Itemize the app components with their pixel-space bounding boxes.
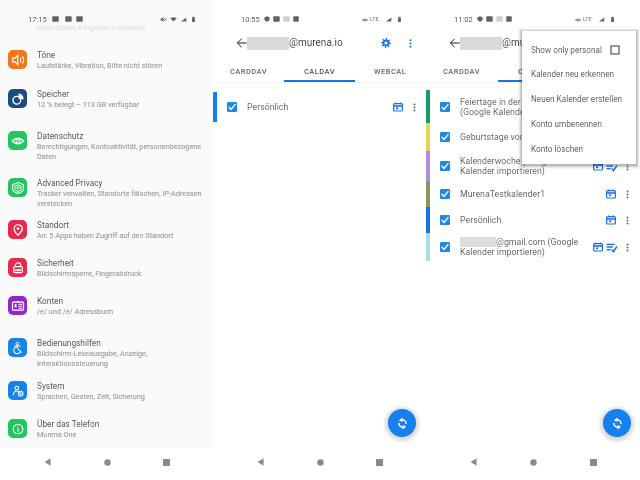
button[interactable]: Persönlich (426, 207, 640, 233)
button[interactable]: Home (522, 451, 544, 473)
staticText: Tracker verwalten, Standorte fälschen, I… (37, 189, 202, 208)
button[interactable]: Standort (0, 213, 213, 246)
staticText: Sprachen, Gesten, Zeit, Sicherung (37, 392, 145, 401)
button[interactable]: WEBCAL (355, 60, 426, 82)
staticText: @murena.io (502, 37, 556, 49)
button[interactable]: CALDAV (498, 60, 569, 82)
staticText: Konto löschen (531, 144, 584, 154)
staticText: @gmail.com (Google (496, 237, 579, 247)
staticText: (Google Kalender importieren) (460, 107, 578, 117)
staticText: Konto umbenennen (531, 119, 602, 129)
other: Calendar (393, 102, 403, 112)
button[interactable]: Konto löschen (522, 136, 636, 161)
other: Calendar (606, 215, 616, 225)
staticText: Kalenderwoche (Google (460, 156, 554, 166)
button[interactable]: More options (621, 207, 633, 233)
button[interactable]: CARDDAV (426, 60, 498, 82)
button[interactable]: More options (621, 233, 633, 261)
button[interactable]: Settings (591, 35, 607, 51)
button[interactable]: More options (621, 151, 633, 181)
staticText: Sicherheit (37, 258, 74, 268)
button[interactable]: Back (249, 451, 271, 473)
button[interactable]: Home (96, 451, 118, 473)
staticText: Feiertage in der Schweiz (460, 97, 556, 107)
button[interactable]: Speicher (0, 82, 213, 115)
staticText: Konten (37, 296, 64, 306)
button[interactable]: Feiertage in der Schweiz (426, 90, 640, 123)
staticText: CALDAV (304, 67, 336, 76)
staticText: CALDAV (518, 67, 550, 76)
staticText: @murena.io (289, 37, 343, 49)
staticText: /e/ und /e/ Adressbuch (37, 307, 114, 316)
button[interactable]: Recents (368, 451, 390, 473)
button[interactable]: Settings (378, 35, 394, 51)
other: Tasks (606, 242, 617, 253)
button[interactable]: Persönlich (213, 92, 426, 122)
button[interactable]: Advanced Privacy (0, 171, 213, 210)
staticText: WEBCAL (588, 67, 621, 76)
staticText: Bildschirm-Leseausgabe, Anzeige, Interak… (37, 349, 148, 368)
staticText: Speicher (37, 89, 70, 99)
staticText: 10:55 (241, 15, 260, 24)
button[interactable]: CARDDAV (213, 60, 284, 82)
staticText: Lautstärke, Vibration, Bitte nicht störe… (37, 61, 163, 70)
button[interactable]: Neuen Kalender erstellen (522, 86, 636, 111)
button[interactable]: MurenaTestkalender1 (426, 181, 640, 207)
button[interactable]: Über das Telefon (0, 412, 213, 445)
button[interactable]: Show only personal (522, 37, 636, 62)
button[interactable]: Datenschutz (0, 124, 213, 163)
button[interactable]: More options (621, 181, 633, 207)
button[interactable]: Kalender neu erkennen (522, 61, 636, 86)
button[interactable]: Recents (155, 451, 177, 473)
staticText: Neuen Kalender erstellen (531, 94, 623, 104)
staticText: LTE (370, 16, 379, 22)
other: Tasks (606, 101, 617, 112)
staticText: Kalender importieren) (460, 166, 545, 176)
other: Calendar (593, 242, 603, 252)
staticText: Advanced Privacy (37, 178, 103, 188)
button[interactable]: Sync (603, 409, 631, 437)
staticText: Bedienungshilfen (37, 338, 101, 348)
button[interactable]: WEBCAL (569, 60, 640, 82)
button[interactable]: More options (621, 90, 633, 123)
button[interactable]: Konten (0, 289, 213, 322)
other: Calendar (593, 161, 603, 171)
staticText: Persönlich (247, 102, 289, 112)
button[interactable]: Home (309, 451, 331, 473)
button[interactable]: More options (615, 35, 631, 51)
staticText: 17:15 (28, 15, 47, 24)
staticText: CARDDAV (443, 67, 481, 76)
staticText: Nicht stören, Klingelton, Lautstärke (37, 24, 146, 32)
button[interactable]: More options (402, 35, 418, 51)
button[interactable]: CALDAV (284, 60, 355, 82)
staticText: Standort (37, 220, 69, 230)
button[interactable]: Back (447, 35, 463, 51)
button[interactable]: System (0, 374, 213, 407)
button[interactable]: Konto umbenennen (522, 111, 636, 136)
staticText: 12 % belegt – 113 GB verfügbar (37, 100, 140, 109)
button[interactable]: Kalenderwoche (Google (426, 151, 640, 181)
staticText: Über das Telefon (37, 419, 100, 429)
button[interactable]: Recents (582, 451, 604, 473)
button[interactable]: Back (36, 451, 58, 473)
staticText: An: 5 Apps haben Zugriff auf den Standor… (37, 231, 174, 240)
button[interactable]: Sicherheit (0, 251, 213, 284)
staticText: Töne (37, 50, 56, 60)
staticText: Murena One (37, 430, 77, 439)
button[interactable]: Sync (388, 409, 416, 437)
button[interactable]: @gmail.com (Google (426, 233, 640, 261)
button[interactable]: Bedienungshilfen (0, 331, 213, 370)
staticText: Persönlich (460, 215, 502, 225)
staticText: System (37, 381, 65, 391)
button[interactable]: Back (234, 35, 250, 51)
staticText: Berechtigungen, Kontoaktivität, personen… (37, 142, 202, 161)
button[interactable]: Töne (0, 43, 213, 76)
button[interactable]: Back (462, 451, 484, 473)
button[interactable]: Geburtstage von Kontakten (426, 123, 640, 151)
staticText: LTE (583, 16, 592, 22)
other: Tasks (606, 161, 617, 172)
button[interactable]: More options (408, 92, 420, 122)
